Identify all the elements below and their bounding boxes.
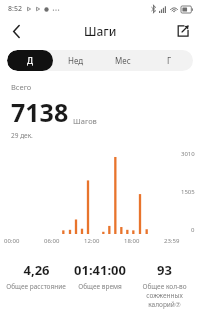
staticText: Шагов (73, 116, 97, 126)
staticText: Общее расстояние (6, 282, 66, 291)
button[interactable]: Д (7, 50, 53, 71)
staticText: 4,26 (23, 261, 50, 279)
button[interactable]: Г (146, 50, 193, 71)
staticText: Общее кол-во сожженных калорий⑦ (142, 282, 187, 309)
staticText: Д (27, 55, 33, 66)
staticText: 23:59 (164, 237, 180, 245)
staticText: Мес (115, 55, 131, 66)
staticText: Г (167, 55, 172, 66)
staticText: 18:00 (124, 237, 140, 245)
staticText: 00:00 (4, 237, 20, 245)
staticText: Нед (68, 55, 84, 66)
staticText: 1505 (181, 188, 195, 196)
button[interactable]: 4,26 (4, 259, 68, 293)
staticText: 7138 (11, 95, 69, 129)
staticText: 0 (191, 226, 195, 234)
staticText: 29 дек. (11, 131, 33, 140)
staticText: 12:00 (84, 237, 100, 245)
staticText: Всего (11, 82, 32, 92)
staticText: Общее время (78, 282, 122, 291)
button[interactable]: Мес (99, 50, 146, 71)
button[interactable]: Back (3, 18, 29, 44)
staticText: 01:41:00 (74, 261, 126, 279)
staticText: 93 (157, 261, 172, 279)
button[interactable]: 93 (132, 259, 196, 311)
staticText: 8:52 (8, 4, 22, 14)
button[interactable]: 01:41:00 (68, 259, 132, 293)
button[interactable]: Share (170, 18, 196, 44)
staticText: Шаги (84, 23, 117, 39)
staticText: 3010 (181, 150, 195, 158)
staticText: 06:00 (44, 237, 60, 245)
button[interactable]: Нед (53, 50, 99, 71)
